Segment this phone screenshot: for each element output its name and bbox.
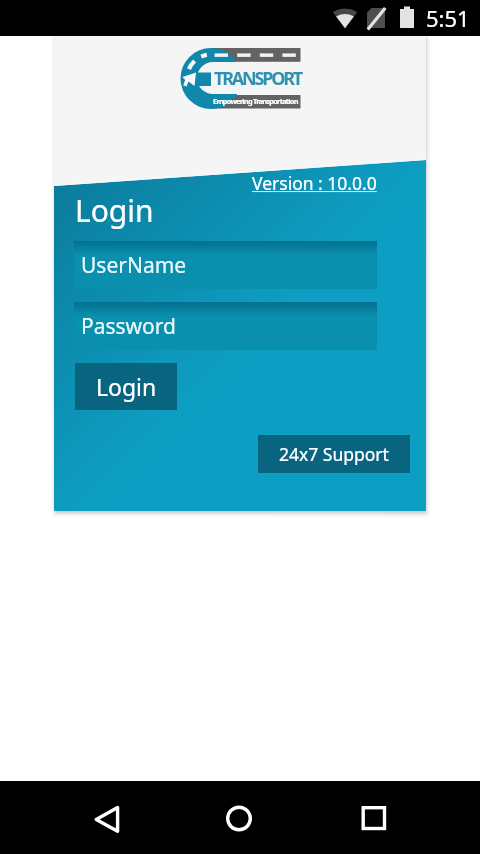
staticText: Password — [81, 312, 176, 341]
staticText: UserName — [81, 251, 187, 280]
staticText: 24x7 Support — [279, 442, 389, 466]
button[interactable]: UserName — [74, 241, 377, 289]
staticText: Login — [75, 190, 154, 231]
button[interactable]: Back — [72, 786, 140, 849]
button[interactable]: Password — [74, 302, 377, 350]
staticText: Version : 10.0.0 — [252, 171, 377, 195]
button[interactable]: Recents — [340, 786, 408, 849]
button[interactable]: Home — [205, 786, 273, 849]
button[interactable]: Version : 10.0.0 — [250, 169, 379, 197]
staticText: TRANSPORT — [214, 66, 302, 91]
button[interactable]: 24x7 Support — [258, 435, 410, 473]
staticText: Empowering Transportation — [213, 96, 298, 106]
staticText: Login — [96, 371, 157, 402]
button[interactable]: Login — [75, 363, 177, 410]
staticText: 5:51 — [426, 3, 470, 33]
